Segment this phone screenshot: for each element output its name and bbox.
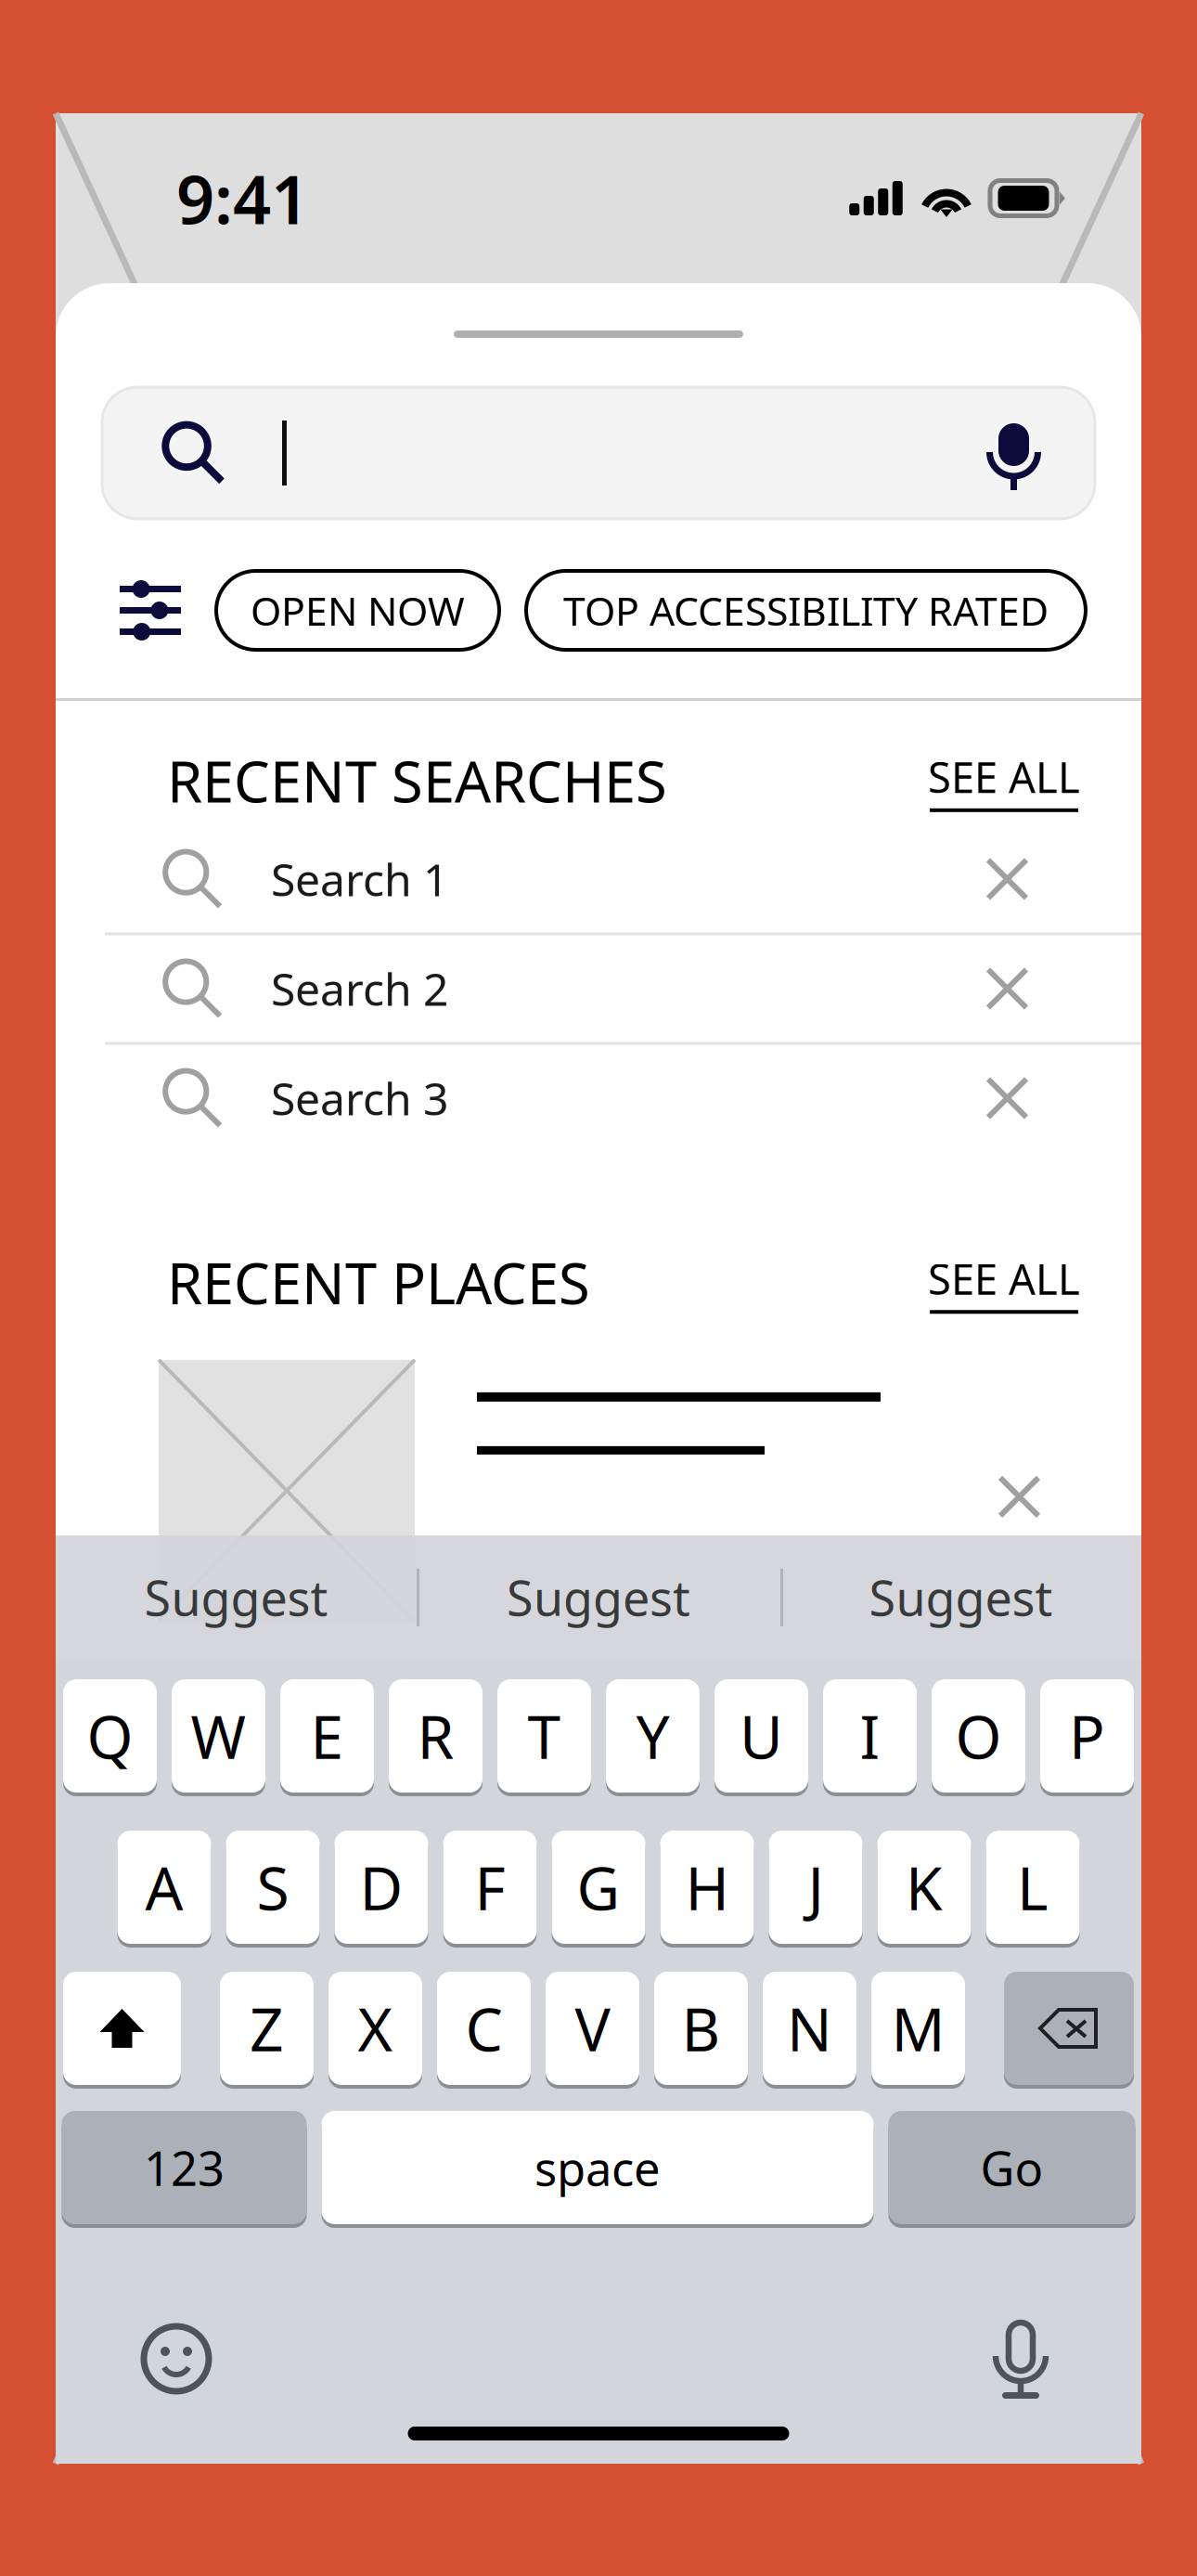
staticText: H xyxy=(685,1848,729,1927)
button[interactable]: Shift xyxy=(63,1972,181,2089)
staticText: Search 1 xyxy=(271,849,448,909)
button[interactable]: Search 1 xyxy=(56,826,1141,932)
staticText: J xyxy=(808,1848,824,1927)
button[interactable]: Suggest xyxy=(56,1535,417,1659)
button[interactable]: N xyxy=(763,1972,856,2089)
staticText: 123 xyxy=(144,2136,225,2199)
button[interactable]: D xyxy=(335,1831,428,1948)
staticText: RECENT SEARCHES xyxy=(167,743,667,818)
staticText: SEE ALL xyxy=(928,749,1080,805)
button[interactable]: Z xyxy=(220,1972,314,2089)
button[interactable]: V xyxy=(546,1972,639,2089)
button[interactable]: H xyxy=(660,1831,754,1948)
button[interactable]: Dictate xyxy=(984,2314,1058,2403)
staticText: Search 3 xyxy=(271,1069,448,1128)
staticText: S xyxy=(257,1848,289,1927)
button[interactable]: X xyxy=(328,1972,422,2089)
staticText: Suggest xyxy=(144,1565,328,1629)
button[interactable]: E xyxy=(280,1679,374,1796)
button[interactable]: R xyxy=(389,1679,483,1796)
staticText: OPEN NOW xyxy=(251,584,465,637)
button[interactable]: Search 2 xyxy=(56,935,1141,1042)
button[interactable]: G xyxy=(552,1831,645,1948)
button[interactable]: Suggest xyxy=(417,1535,780,1659)
button[interactable]: TOP ACCESSIBILITY RATED xyxy=(526,571,1086,650)
staticText: 9:41 xyxy=(176,154,309,243)
staticText: X xyxy=(358,1989,393,2068)
button[interactable]: A xyxy=(117,1831,211,1948)
button[interactable]: T xyxy=(497,1679,591,1796)
button[interactable]: P xyxy=(1040,1679,1134,1796)
staticText: O xyxy=(955,1696,1002,1775)
staticText: Search 2 xyxy=(271,959,448,1018)
staticText: B xyxy=(682,1989,721,2068)
button[interactable]: B xyxy=(654,1972,748,2089)
staticText: W xyxy=(191,1696,246,1775)
button[interactable]: SEE ALL xyxy=(928,1250,1080,1314)
staticText: A xyxy=(145,1848,183,1927)
button[interactable]: 123 xyxy=(62,2111,307,2228)
staticText: V xyxy=(575,1989,610,2068)
staticText: M xyxy=(891,1989,945,2068)
button[interactable]: Go xyxy=(888,2111,1135,2228)
staticText: P xyxy=(1069,1696,1105,1775)
staticText: G xyxy=(577,1848,620,1927)
button[interactable]: OPEN NOW xyxy=(216,571,499,650)
staticText: TOP ACCESSIBILITY RATED xyxy=(563,584,1049,637)
staticText: Go xyxy=(980,2136,1043,2199)
button[interactable]: F xyxy=(443,1831,537,1948)
button[interactable]: Delete xyxy=(1004,1972,1134,2089)
staticText: D xyxy=(360,1848,403,1927)
button[interactable]: K xyxy=(877,1831,971,1948)
button[interactable]: W xyxy=(172,1679,265,1796)
button[interactable]: space xyxy=(322,2111,874,2228)
button[interactable]: O xyxy=(932,1679,1025,1796)
staticText: T xyxy=(528,1696,561,1775)
staticText: Z xyxy=(250,1989,284,2068)
staticText: RECENT PLACES xyxy=(167,1244,590,1320)
staticText: Suggest xyxy=(869,1565,1053,1629)
button[interactable]: S xyxy=(226,1831,320,1948)
button[interactable]: Y xyxy=(606,1679,700,1796)
button[interactable]: Suggest xyxy=(780,1535,1141,1659)
staticText: Suggest xyxy=(507,1565,690,1629)
button[interactable]: U xyxy=(714,1679,808,1796)
button[interactable]: L xyxy=(986,1831,1080,1948)
button[interactable]: Search 3 xyxy=(56,1045,1141,1151)
button[interactable]: SEE ALL xyxy=(928,749,1080,812)
staticText: R xyxy=(417,1696,454,1775)
button[interactable]: Q xyxy=(63,1679,157,1796)
button[interactable]: Filters xyxy=(120,571,181,650)
staticText: Q xyxy=(87,1696,133,1775)
staticText: E xyxy=(310,1696,344,1775)
staticText: I xyxy=(860,1696,880,1775)
button[interactable]: C xyxy=(437,1972,531,2089)
staticText: SEE ALL xyxy=(928,1250,1080,1306)
staticText: N xyxy=(787,1989,832,2068)
staticText: F xyxy=(475,1848,505,1927)
button[interactable]: I xyxy=(823,1679,917,1796)
staticText: L xyxy=(1017,1848,1049,1927)
staticText: C xyxy=(465,1989,502,2068)
button[interactable]: Emoji xyxy=(139,2322,213,2396)
staticText: space xyxy=(534,2136,661,2199)
button[interactable]: M xyxy=(871,1972,965,2089)
button[interactable]: J xyxy=(769,1831,862,1948)
staticText: K xyxy=(906,1848,943,1927)
staticText: Y xyxy=(636,1696,669,1775)
staticText: U xyxy=(740,1696,783,1775)
